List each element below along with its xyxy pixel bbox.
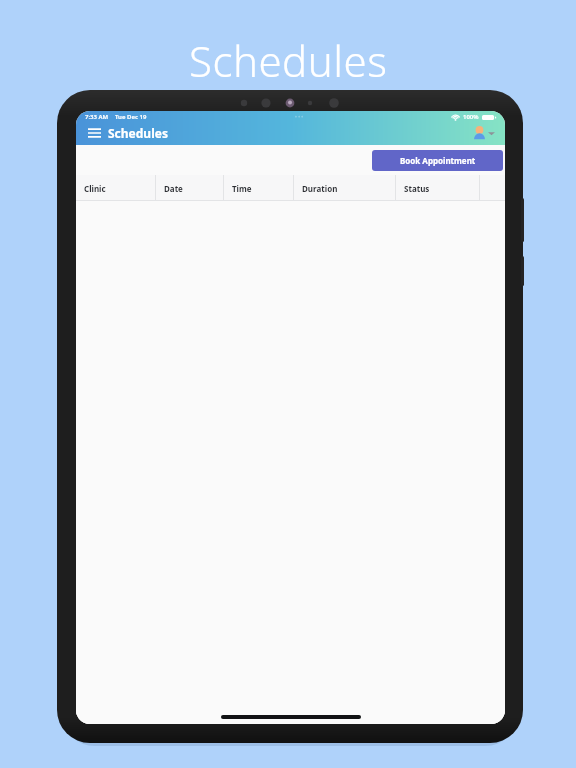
- staticText: Book Appointment: [400, 155, 476, 166]
- staticText: 100%: [463, 113, 479, 121]
- staticText: Status: [404, 183, 430, 194]
- staticText: Time: [232, 183, 252, 194]
- staticText: Schedules: [189, 32, 388, 89]
- staticText: Tue Dec 19: [115, 113, 147, 121]
- button[interactable]: Duration: [294, 175, 395, 201]
- button[interactable]: Time: [224, 175, 293, 201]
- staticText: Date: [164, 183, 183, 194]
- staticText: 7:33 AM: [85, 113, 109, 121]
- button[interactable]: Date: [156, 175, 223, 201]
- button[interactable]: Book Appointment: [372, 150, 503, 171]
- button[interactable]: Account menu: [471, 126, 497, 140]
- staticText: Schedules: [108, 125, 168, 141]
- button[interactable]: Status: [396, 175, 479, 201]
- button[interactable]: Clinic: [76, 175, 155, 201]
- staticText: Duration: [302, 183, 338, 194]
- button[interactable]: Open navigation menu: [86, 125, 102, 141]
- staticText: Clinic: [84, 183, 106, 194]
- staticText: • • •: [295, 114, 304, 121]
